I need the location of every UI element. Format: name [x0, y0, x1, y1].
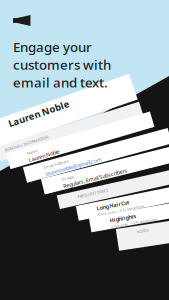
staticText: Regulars, Email Subscribers — [20, 9, 86, 16]
staticText: Lauren Noble — [20, 9, 52, 16]
staticText: laurennoble@gmail.com — [20, 9, 78, 16]
staticText: 5 Services • 5 Transactions — [20, 11, 67, 16]
staticText: 3 Services • 3 Transactions — [20, 11, 67, 16]
staticText: Engage your customers with email and tex… — [13, 38, 111, 91]
